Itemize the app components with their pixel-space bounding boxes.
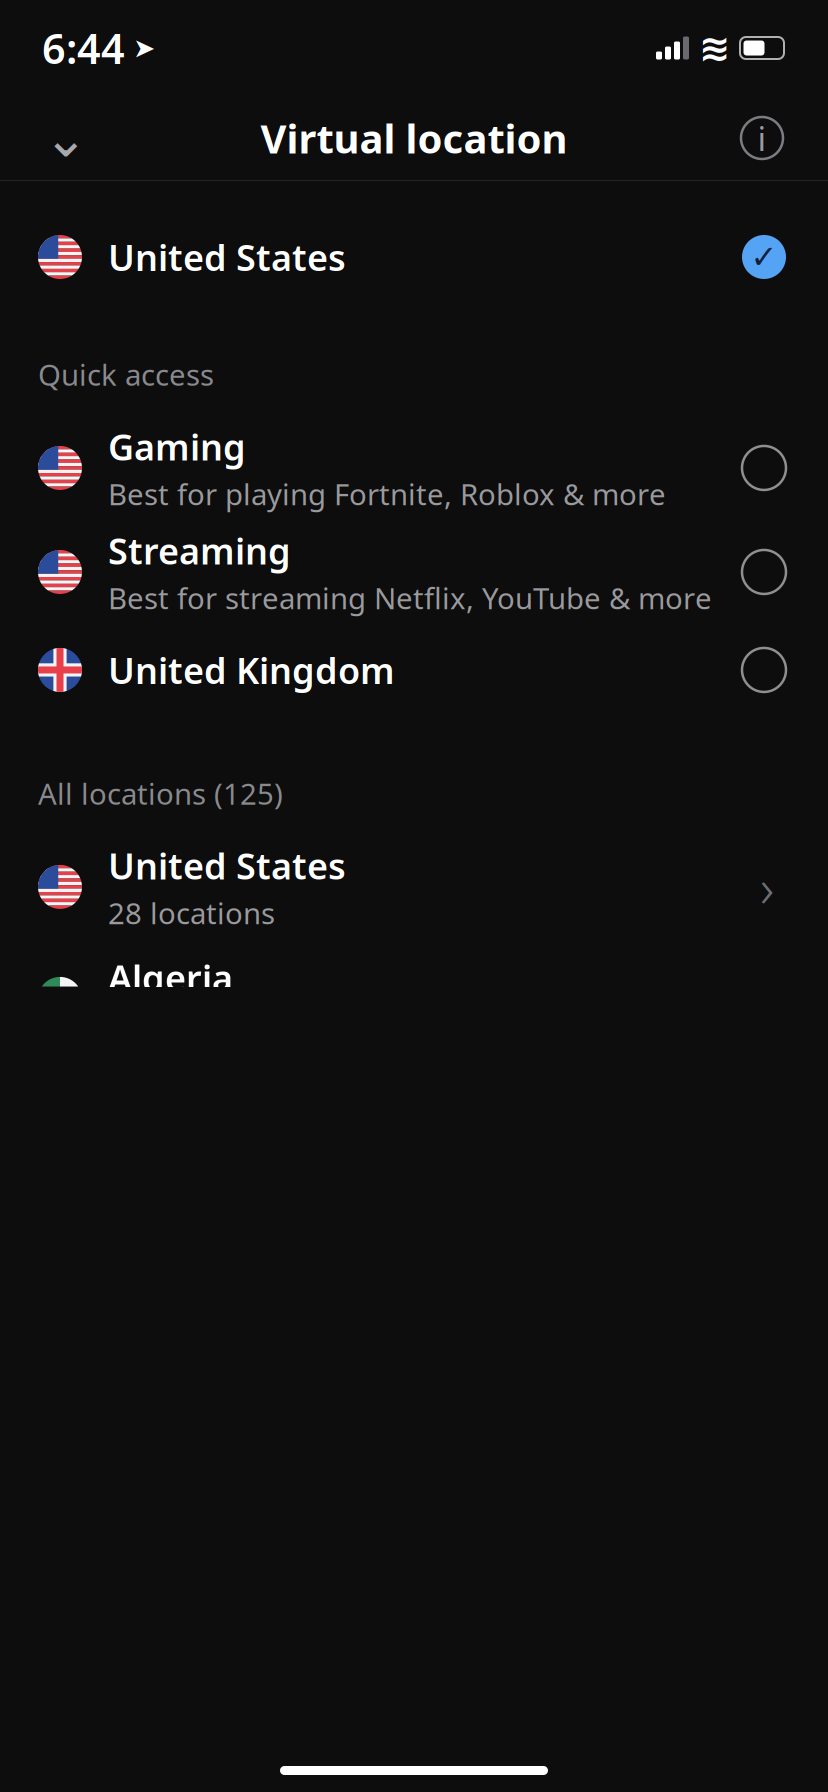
staticText: i — [757, 116, 766, 160]
button[interactable]: United States — [0, 831, 828, 943]
button[interactable]: Information — [726, 102, 798, 174]
staticText: United States — [108, 233, 346, 281]
button[interactable]: Collapse — [30, 102, 102, 174]
staticText: ⌄ — [43, 108, 88, 168]
staticText: Best for playing Fortnite, Roblox & more — [108, 474, 666, 513]
staticText: Best for streaming Netflix, YouTube & mo… — [108, 578, 712, 617]
staticText: › — [760, 851, 774, 922]
staticText: ➤ — [133, 33, 155, 63]
staticText: Quick access — [38, 355, 214, 394]
staticText: United Kingdom — [108, 646, 395, 694]
staticText: Virtual location — [260, 111, 567, 164]
staticText: Algeria — [108, 953, 233, 1001]
button[interactable]: United Kingdom — [0, 624, 828, 716]
staticText: Streaming — [108, 527, 291, 574]
staticText: 28 locations — [108, 893, 275, 932]
button[interactable]: ★ — [0, 943, 828, 1055]
staticText: ≋ — [699, 27, 730, 69]
staticText: Gaming — [108, 423, 246, 470]
button[interactable]: Streaming — [0, 520, 828, 624]
staticText: 6:44 — [42, 21, 125, 75]
button[interactable]: United States — [0, 211, 828, 303]
staticText: United States — [108, 841, 346, 889]
button[interactable]: Gaming — [0, 416, 828, 520]
staticText: ✓ — [750, 239, 777, 275]
staticText: All locations (125) — [38, 774, 283, 813]
